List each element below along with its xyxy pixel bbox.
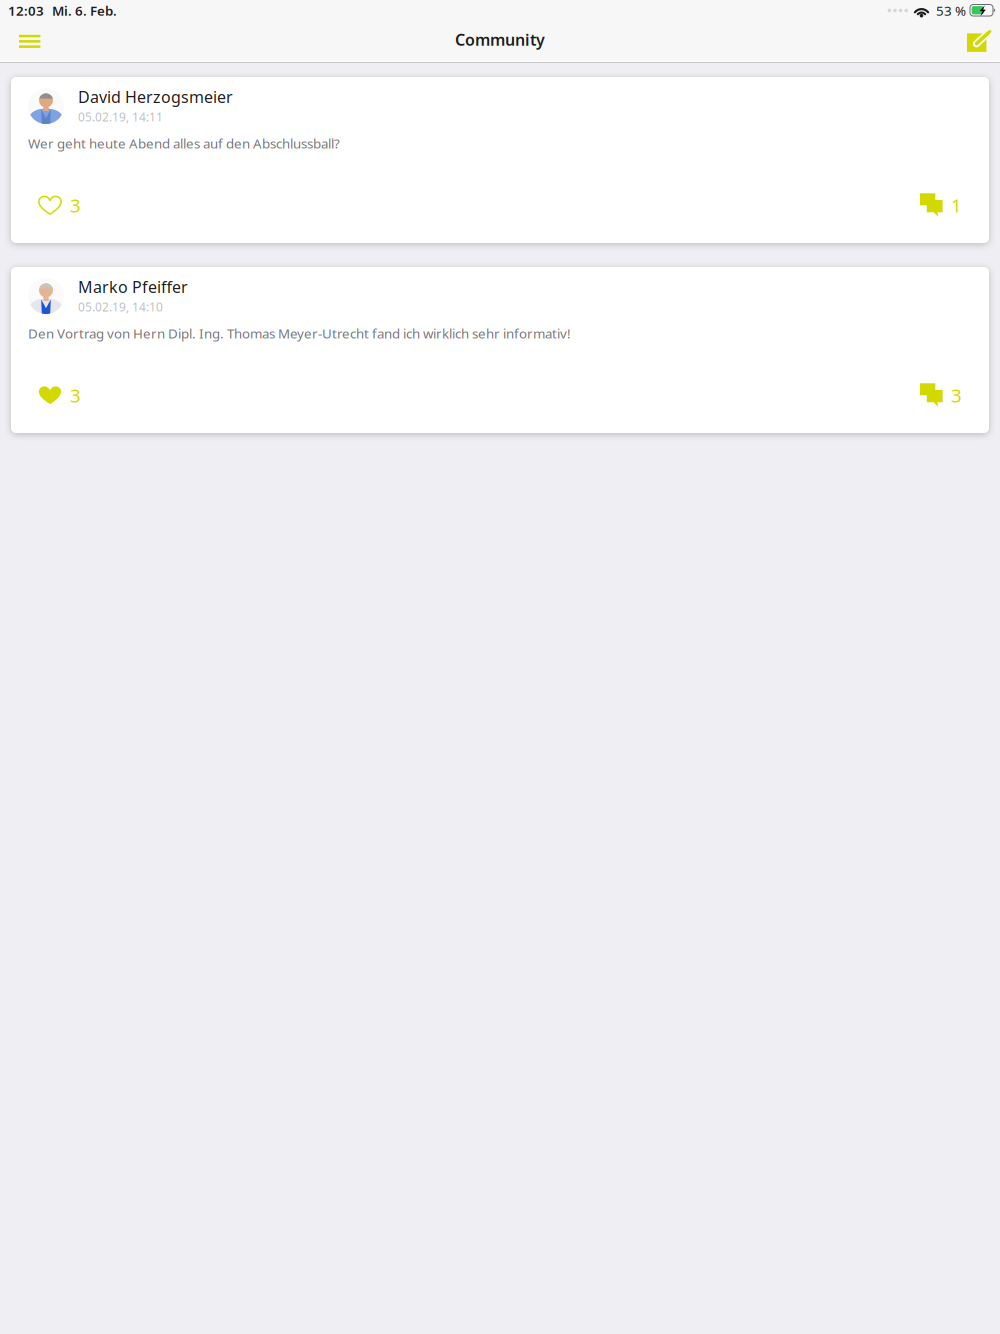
staticText: Marko Pfeiffer bbox=[78, 276, 188, 298]
staticText: 12:03 bbox=[8, 1, 44, 20]
button[interactable]: 3 bbox=[11, 376, 97, 415]
staticText: 05.02.19, 14:11 bbox=[78, 109, 163, 125]
button[interactable]: Menu bbox=[0, 21, 62, 60]
staticText: 3 bbox=[70, 193, 81, 218]
button[interactable]: Compose bbox=[947, 21, 1000, 61]
button[interactable]: 1 bbox=[904, 190, 989, 221]
button[interactable]: 3 bbox=[904, 380, 989, 411]
staticText: 3 bbox=[951, 383, 962, 408]
button[interactable]: 3 bbox=[11, 186, 97, 225]
staticText: 05.02.19, 14:10 bbox=[78, 299, 163, 315]
staticText: Wer geht heute Abend alles auf den Absch… bbox=[28, 134, 340, 152]
staticText: 53 % bbox=[936, 1, 966, 20]
staticText: Den Vortrag von Hern Dipl. Ing. Thomas M… bbox=[28, 324, 571, 342]
staticText: 3 bbox=[70, 383, 81, 408]
staticText: Mi. 6. Feb. bbox=[52, 1, 117, 20]
staticText: Community bbox=[455, 29, 545, 50]
staticText: 1 bbox=[951, 193, 962, 218]
staticText: David Herzogsmeier bbox=[78, 86, 233, 108]
